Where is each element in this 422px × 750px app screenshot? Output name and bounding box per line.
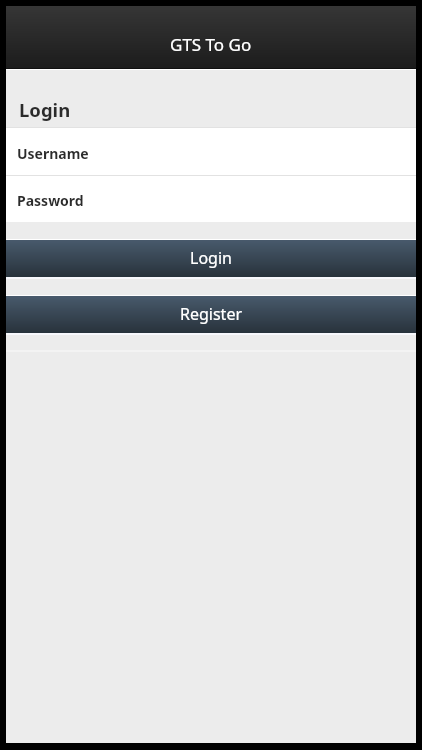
button[interactable]: Login [6,240,416,277]
button[interactable]: Password [6,176,416,222]
staticText: Password [17,191,84,210]
staticText: Login [190,247,232,269]
staticText: GTS To Go [170,33,252,56]
button[interactable]: Register [6,296,416,333]
staticText: Register [180,303,243,325]
button[interactable]: Username [6,128,416,175]
staticText: Username [17,144,89,163]
staticText: Login [19,97,71,122]
